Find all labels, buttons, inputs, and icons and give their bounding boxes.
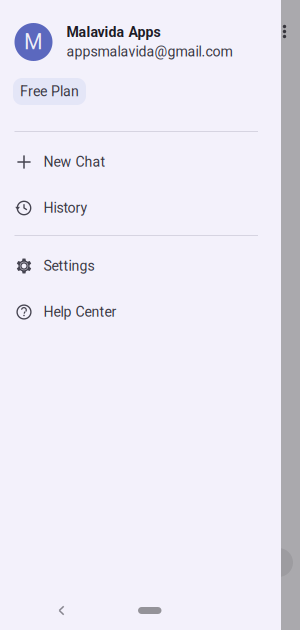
staticText: Settings	[43, 258, 94, 274]
button[interactable]: New Chat	[0, 139, 281, 185]
button[interactable]: Back	[48, 597, 74, 623]
staticText: M	[24, 29, 43, 54]
button[interactable]: M	[0, 23, 281, 61]
staticText: History	[43, 200, 87, 216]
staticText: appsmalavida@gmail.com	[66, 43, 232, 60]
staticText: Malavida Apps	[66, 24, 160, 40]
button[interactable]: History	[0, 185, 281, 231]
button[interactable]: Help Center	[0, 289, 281, 335]
staticText: Free Plan	[20, 83, 79, 100]
staticText: Help Center	[43, 304, 116, 320]
staticText: New Chat	[43, 154, 105, 170]
button[interactable]: Settings	[0, 243, 281, 289]
button[interactable]: Free Plan	[13, 78, 86, 105]
